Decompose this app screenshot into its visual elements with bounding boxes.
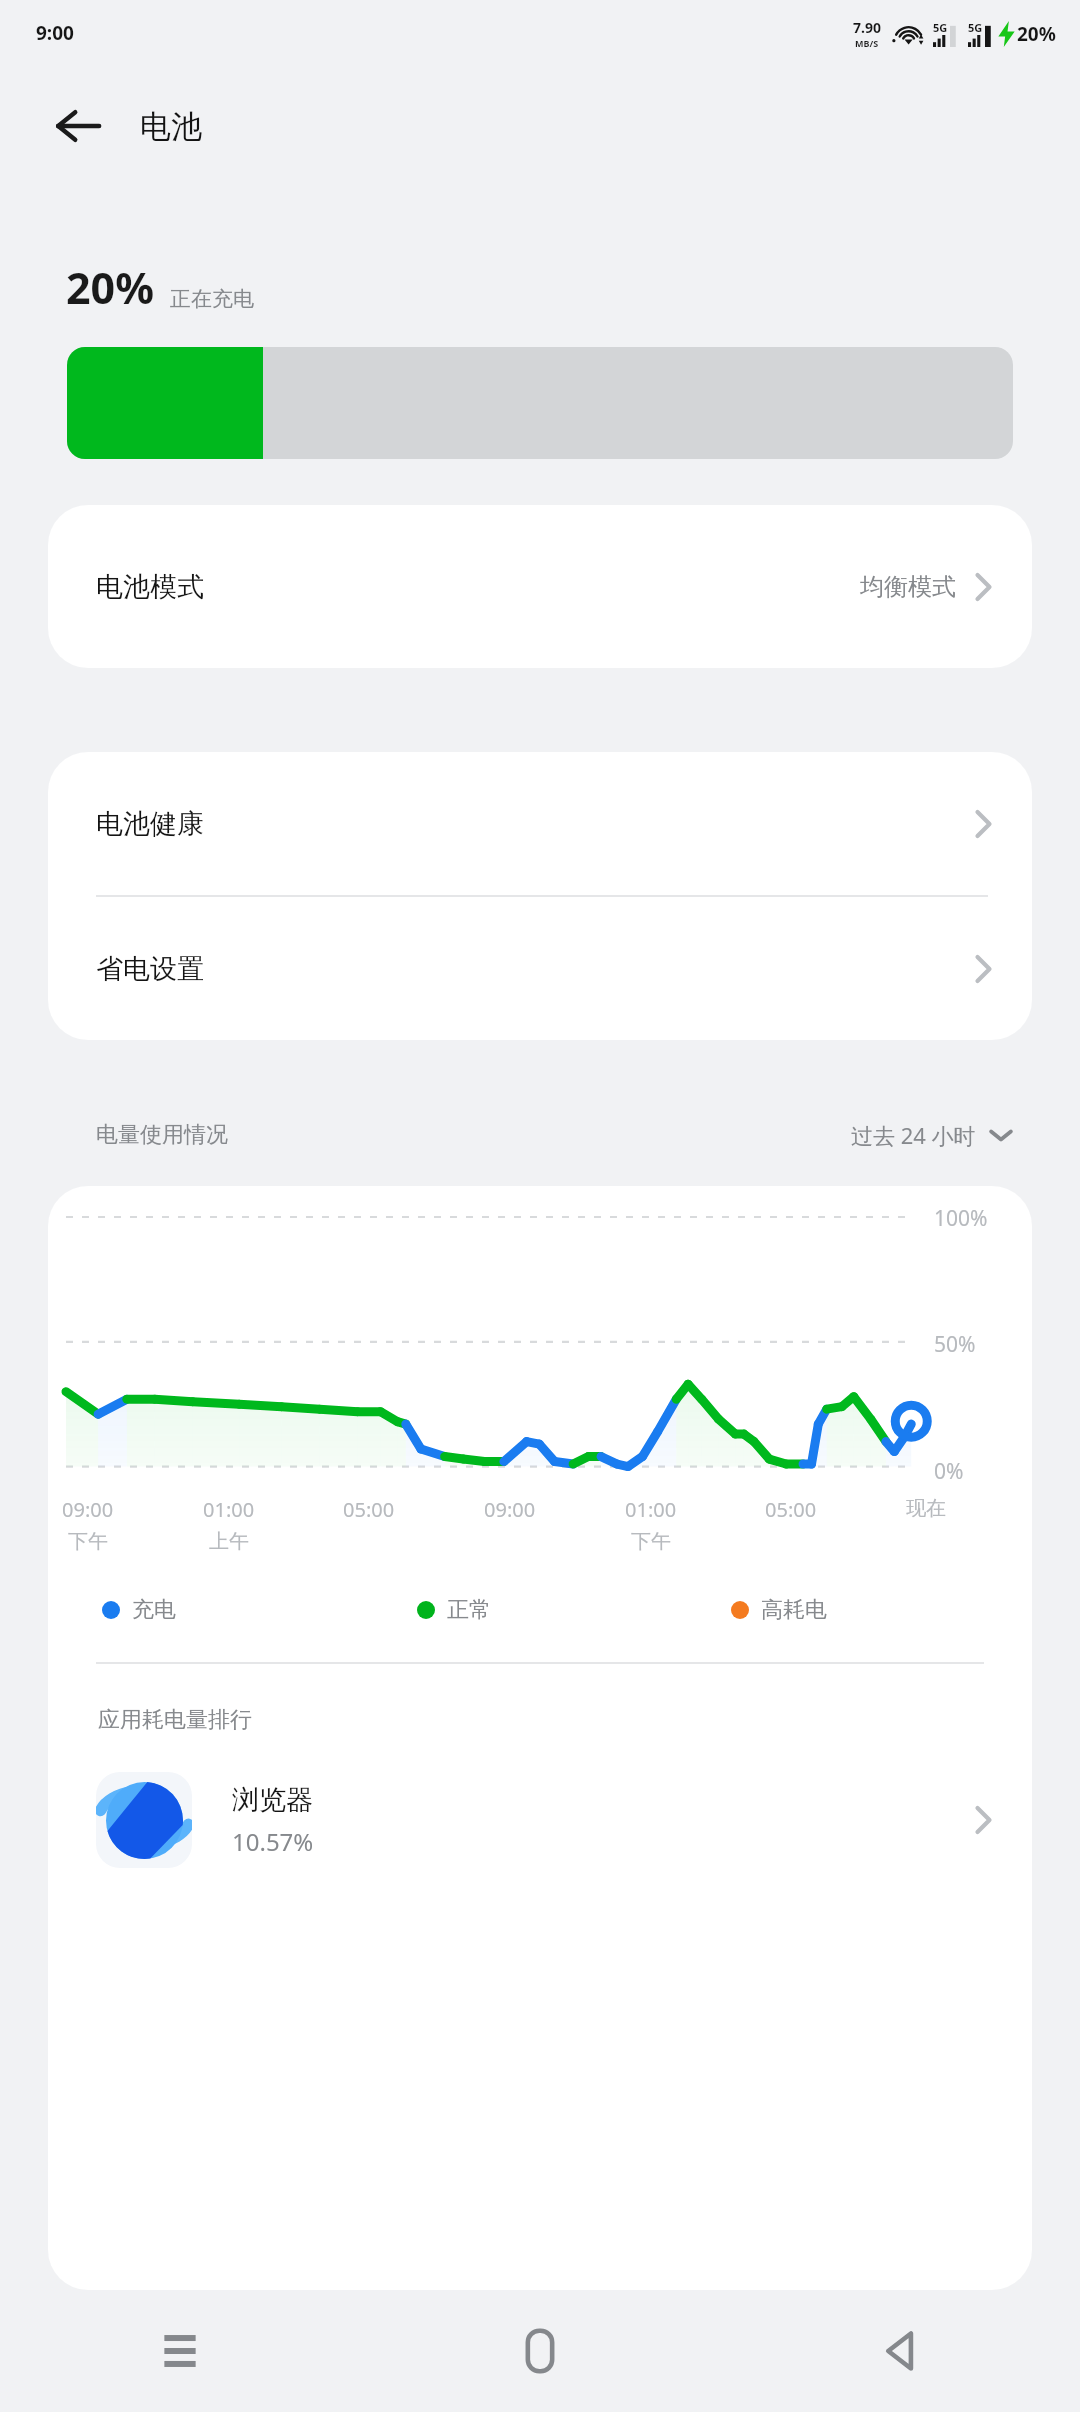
staticText: 现在 bbox=[906, 1496, 946, 1521]
staticText: 过去 24 小时 bbox=[851, 1120, 976, 1150]
staticText: MB/S bbox=[855, 37, 879, 49]
staticText: 电量使用情况 bbox=[96, 1121, 228, 1149]
staticText: 20% bbox=[66, 258, 154, 317]
staticText: 09:00 bbox=[484, 1496, 536, 1523]
staticText: 省电设置 bbox=[96, 952, 204, 986]
staticText: 电池模式 bbox=[96, 570, 204, 604]
button[interactable]: Home bbox=[360, 2290, 720, 2412]
staticText: 5G bbox=[933, 20, 948, 35]
staticText: 100% bbox=[934, 1204, 988, 1233]
button[interactable]: 电池健康 bbox=[48, 752, 1032, 895]
staticText: 电池 bbox=[140, 107, 202, 146]
staticText: 下午 bbox=[68, 1529, 108, 1554]
staticText: 0% bbox=[934, 1457, 964, 1486]
staticText: 应用耗电量排行 bbox=[98, 1706, 252, 1734]
staticText: 20% bbox=[1017, 21, 1056, 47]
button[interactable]: 电池模式 bbox=[48, 505, 1032, 668]
staticText: 正在充电 bbox=[170, 286, 254, 312]
staticText: 下午 bbox=[631, 1529, 671, 1554]
button[interactable]: Back bbox=[40, 88, 116, 164]
button[interactable]: 过去 24 小时 bbox=[847, 1112, 1018, 1158]
button[interactable]: 浏览器 bbox=[48, 1772, 1032, 1868]
staticText: 10.57% bbox=[232, 1825, 314, 1858]
staticText: 浏览器 bbox=[232, 1783, 313, 1817]
staticText: 7.90 bbox=[853, 18, 881, 37]
staticText: 9:00 bbox=[36, 20, 74, 46]
staticText: 电池健康 bbox=[96, 807, 204, 841]
button[interactable]: 省电设置 bbox=[48, 897, 1032, 1040]
staticText: 充电 bbox=[132, 1596, 176, 1624]
staticText: 5G bbox=[968, 20, 983, 35]
staticText: 01:00 bbox=[625, 1496, 677, 1523]
staticText: 正常 bbox=[447, 1596, 491, 1624]
staticText: 均衡模式 bbox=[860, 572, 956, 602]
staticText: 09:00 bbox=[62, 1496, 114, 1523]
staticText: 高耗电 bbox=[761, 1596, 827, 1624]
button[interactable]: Recents bbox=[0, 2290, 360, 2412]
staticText: 01:00 bbox=[203, 1496, 255, 1523]
staticText: 05:00 bbox=[343, 1496, 395, 1523]
staticText: 上午 bbox=[209, 1529, 249, 1554]
button[interactable]: Back bbox=[720, 2290, 1080, 2412]
staticText: 50% bbox=[934, 1330, 976, 1359]
staticText: 05:00 bbox=[765, 1496, 817, 1523]
